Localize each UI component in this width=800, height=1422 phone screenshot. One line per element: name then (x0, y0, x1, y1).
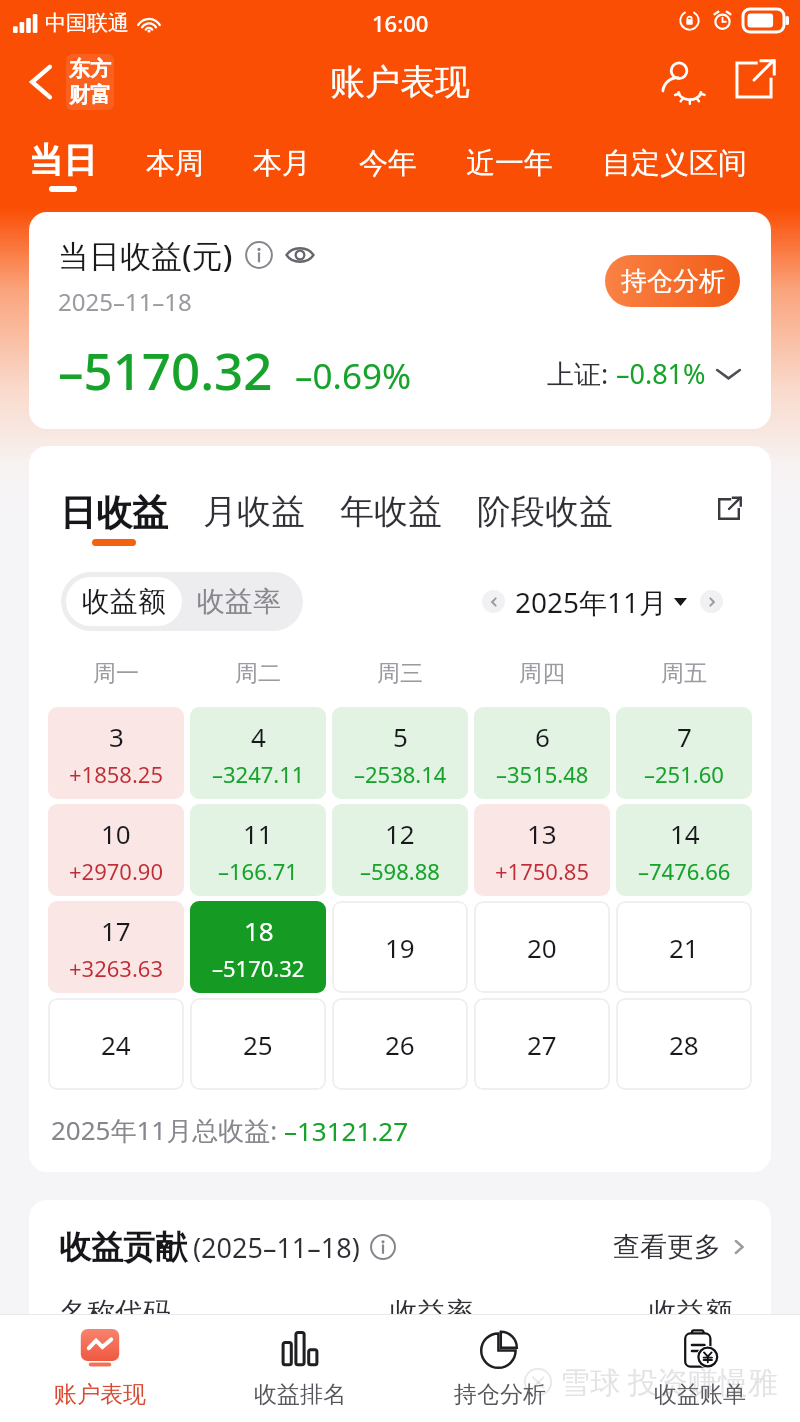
staticText: –3515.48 (496, 759, 589, 789)
button[interactable]: 自定义区间 (602, 145, 747, 192)
button[interactable]: 近一年 (466, 145, 553, 192)
staticText: 周五 (661, 659, 707, 688)
button[interactable]: 26 (332, 998, 468, 1090)
button[interactable]: 12 (332, 804, 468, 896)
staticText: –5170.32 (58, 335, 273, 404)
button[interactable]: 5 (332, 707, 468, 799)
staticText: 2025年11月总收益: (51, 1112, 284, 1148)
staticText: 雪球 投资赚慢雅 (560, 1361, 778, 1402)
staticText: 阶段收益 (477, 490, 613, 533)
button[interactable]: Account (652, 52, 708, 108)
button[interactable]: 28 (616, 998, 752, 1090)
staticText: 收益率 (390, 1295, 474, 1330)
button[interactable]: 4 (190, 707, 326, 799)
button[interactable]: 10 (48, 804, 184, 896)
button[interactable]: 7 (616, 707, 752, 799)
button[interactable]: 21 (616, 901, 752, 993)
button[interactable]: 18 (190, 901, 326, 993)
button[interactable]: 11 (190, 804, 326, 896)
staticText: 2025–11–18 (58, 285, 192, 318)
button[interactable]: 查看更多 (613, 1230, 749, 1264)
staticText: 收益账单 (654, 1380, 746, 1409)
staticText: 13 (527, 816, 557, 851)
button[interactable]: 阶段收益 (477, 490, 613, 544)
staticText: 名称代码 (59, 1295, 171, 1330)
staticText: 周四 (519, 659, 565, 688)
button[interactable]: 3 (48, 707, 184, 799)
staticText: 自定义区间 (602, 145, 747, 182)
button[interactable]: Info (245, 241, 273, 269)
staticText: 本周 (146, 145, 204, 182)
button[interactable]: 17 (48, 901, 184, 993)
button[interactable]: 收益率 (187, 577, 303, 626)
staticText: 年收益 (340, 490, 442, 533)
staticText: 收益率 (197, 584, 281, 619)
button[interactable]: 持仓分析 (605, 255, 740, 307)
staticText: 10 (101, 816, 131, 851)
staticText: 20 (527, 930, 557, 965)
staticText: 账户表现 (54, 1380, 146, 1409)
staticText: –13121.27 (284, 1113, 409, 1148)
button[interactable]: Back (22, 48, 120, 116)
button[interactable]: 14 (616, 804, 752, 896)
staticText: +2970.90 (69, 856, 163, 886)
staticText: 19 (385, 930, 415, 965)
staticText: 5 (393, 719, 408, 754)
staticText: 14 (670, 816, 700, 851)
button[interactable]: 持仓分析 (400, 1323, 600, 1415)
staticText: 上证: (547, 355, 616, 392)
staticText: 28 (669, 1027, 699, 1062)
staticText: 16:00 (372, 8, 429, 38)
button[interactable]: 日收益 (60, 490, 168, 546)
staticText: 12 (385, 816, 415, 851)
staticText: 4 (251, 719, 266, 754)
staticText: 中国联通 (45, 10, 129, 36)
button[interactable]: 19 (332, 901, 468, 993)
staticText: –598.88 (360, 856, 440, 886)
button[interactable]: 13 (474, 804, 610, 896)
button[interactable]: 6 (474, 707, 610, 799)
staticText: 近一年 (466, 145, 553, 182)
button[interactable]: 2025年11月 (515, 583, 687, 621)
button[interactable]: 27 (474, 998, 610, 1090)
staticText: 收益额 (82, 584, 166, 619)
button[interactable]: Next month (700, 590, 723, 613)
staticText: 收益额 (649, 1295, 733, 1330)
button[interactable]: Share (728, 54, 780, 106)
button[interactable]: 上证: (547, 355, 742, 392)
staticText: –0.81% (616, 355, 706, 392)
button[interactable]: 账户表现 (0, 1323, 200, 1415)
staticText: 11 (243, 816, 273, 851)
staticText: 当日 (29, 139, 97, 182)
staticText: 7 (677, 719, 692, 754)
button[interactable]: 年收益 (340, 490, 442, 544)
staticText: 收益排名 (254, 1380, 346, 1409)
staticText: 25 (243, 1027, 273, 1062)
staticText: 月收益 (203, 490, 305, 533)
staticText: 21 (669, 930, 699, 965)
button[interactable]: 本月 (253, 145, 311, 192)
staticText: 收益贡献 (59, 1227, 187, 1267)
button[interactable]: 当日 (29, 139, 97, 192)
staticText: 当日收益(元) (58, 234, 233, 276)
staticText: 17 (101, 913, 131, 948)
button[interactable]: 24 (48, 998, 184, 1090)
staticText: 今年 (359, 145, 417, 182)
staticText: 查看更多 (613, 1230, 721, 1264)
button[interactable]: Share chart (710, 490, 748, 528)
staticText: 18 (244, 913, 274, 948)
button[interactable]: 25 (190, 998, 326, 1090)
button[interactable]: 收益账单 (600, 1323, 800, 1415)
staticText: +1750.85 (495, 856, 589, 886)
button[interactable]: Previous month (482, 590, 505, 613)
staticText: 财富 (69, 82, 111, 108)
button[interactable]: 本周 (146, 145, 204, 192)
button[interactable]: 月收益 (203, 490, 305, 544)
button[interactable]: 20 (474, 901, 610, 993)
button[interactable]: 今年 (359, 145, 417, 192)
button[interactable]: 收益额 (66, 577, 182, 626)
button[interactable]: Toggle visibility (285, 240, 315, 270)
button[interactable]: 收益排名 (200, 1323, 400, 1415)
staticText: 日收益 (60, 490, 168, 535)
staticText: –0.69% (295, 352, 412, 400)
